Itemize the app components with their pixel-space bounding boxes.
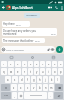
button[interactable]: Contact photo <box>6 5 11 10</box>
staticText: n <box>45 86 47 90</box>
staticText: r <box>24 70 26 74</box>
button[interactable]: Enter <box>54 92 63 99</box>
button[interactable]: c <box>25 84 30 91</box>
staticText: k <box>51 78 53 82</box>
button[interactable]: e <box>15 68 21 75</box>
staticText: b <box>39 86 41 90</box>
staticText: 8 <box>48 63 50 66</box>
staticText: j <box>45 78 46 82</box>
button[interactable]: Alps Schilbert <box>12 4 46 11</box>
button[interactable]: x <box>18 84 24 91</box>
button[interactable]: , <box>12 92 17 99</box>
button[interactable]: More options <box>59 4 64 11</box>
button[interactable]: v <box>31 84 36 91</box>
button[interactable]: t <box>28 68 33 75</box>
button[interactable]: 3 <box>15 61 21 67</box>
staticText: 0 <box>60 63 62 66</box>
button[interactable]: Voice call <box>53 4 59 11</box>
button[interactable]: 0 <box>58 61 63 67</box>
button[interactable]: Send voice message <box>56 46 63 53</box>
staticText: 2 <box>10 63 12 66</box>
staticText: x <box>20 86 22 90</box>
button[interactable]: l <box>55 76 60 83</box>
button[interactable]: r <box>22 68 27 75</box>
button[interactable]: Video call <box>46 4 53 11</box>
staticText: l <box>57 78 58 82</box>
staticText: i <box>48 70 49 74</box>
staticText: q <box>3 70 5 74</box>
button[interactable]: s <box>12 76 18 83</box>
button[interactable]: Back <box>0 4 6 11</box>
button[interactable]: Space <box>24 92 47 99</box>
staticText: e <box>17 70 19 74</box>
staticText: Alps Schilbert <box>12 6 33 10</box>
button[interactable]: n <box>43 84 48 91</box>
button[interactable]: h <box>37 76 42 83</box>
staticText: The message that bother <box>3 39 34 42</box>
staticText: 4 <box>24 63 26 66</box>
button[interactable]: b <box>37 84 42 91</box>
staticText: YESTERDAY <box>26 14 38 17</box>
button[interactable]: 6 <box>34 61 39 67</box>
button[interactable]: Hey there <box>2 21 30 27</box>
button[interactable]: y <box>34 68 39 75</box>
button[interactable]: 1 <box>1 61 7 67</box>
button[interactable]: o <box>52 68 57 75</box>
button[interactable]: z <box>11 84 17 91</box>
staticText: s <box>14 78 16 82</box>
staticText: p <box>60 70 62 74</box>
staticText: t <box>30 70 31 74</box>
button[interactable]: p <box>58 68 63 75</box>
staticText: . <box>50 94 51 98</box>
button[interactable]: Do we have any orders you mentioned <box>2 28 57 36</box>
button[interactable]: Camera <box>51 48 54 51</box>
staticText: 09:18 <box>35 40 40 42</box>
button[interactable]: 9 <box>52 61 57 67</box>
button[interactable]: q <box>1 68 7 75</box>
button[interactable] <box>22 54 43 60</box>
button[interactable]: g <box>31 76 36 83</box>
button[interactable]: Type a message <box>1 46 55 53</box>
button[interactable] <box>0 54 22 60</box>
button[interactable]: ?123 <box>1 92 11 99</box>
staticText: w <box>10 70 13 74</box>
button[interactable] <box>43 54 64 60</box>
button[interactable]: Shift <box>1 84 10 91</box>
button[interactable]: f <box>25 76 30 83</box>
staticText: 3 <box>17 63 19 66</box>
button[interactable]: Backspace <box>55 84 63 91</box>
button[interactable]: . <box>48 92 53 99</box>
staticText: a <box>7 78 9 82</box>
button[interactable]: 2 <box>8 61 14 67</box>
button[interactable]: The message that bother <box>2 38 45 43</box>
button[interactable]: YESTERDAY <box>26 14 38 17</box>
staticText: z <box>13 86 15 90</box>
staticText: c <box>27 86 29 90</box>
button[interactable]: a <box>5 76 11 83</box>
staticText: y <box>36 70 38 74</box>
staticText: o <box>54 70 56 74</box>
staticText: 6 <box>36 63 38 66</box>
staticText: 1 <box>3 63 5 66</box>
staticText: Hey there <box>3 22 15 26</box>
button[interactable]: j <box>43 76 48 83</box>
button[interactable]: m <box>49 84 54 91</box>
button[interactable]: 7 <box>40 61 45 67</box>
button[interactable]: 8 <box>46 61 51 67</box>
staticText: m <box>50 86 53 90</box>
button[interactable]: k <box>49 76 54 83</box>
staticText: , <box>14 94 15 98</box>
button[interactable]: w <box>8 68 14 75</box>
button[interactable]: 4 <box>22 61 27 67</box>
button[interactable]: 5 <box>28 61 33 67</box>
staticText: 7 <box>42 63 44 66</box>
button[interactable]: u <box>40 68 45 75</box>
button[interactable]: Emoji <box>18 92 23 99</box>
button[interactable]: i <box>46 68 51 75</box>
staticText: f <box>27 78 28 82</box>
staticText: Do we have any orders you mentioned <box>3 29 50 35</box>
staticText: u <box>42 70 44 74</box>
button[interactable]: d <box>19 76 24 83</box>
staticText: 9 <box>54 63 56 66</box>
button[interactable]: Attach <box>47 48 50 51</box>
